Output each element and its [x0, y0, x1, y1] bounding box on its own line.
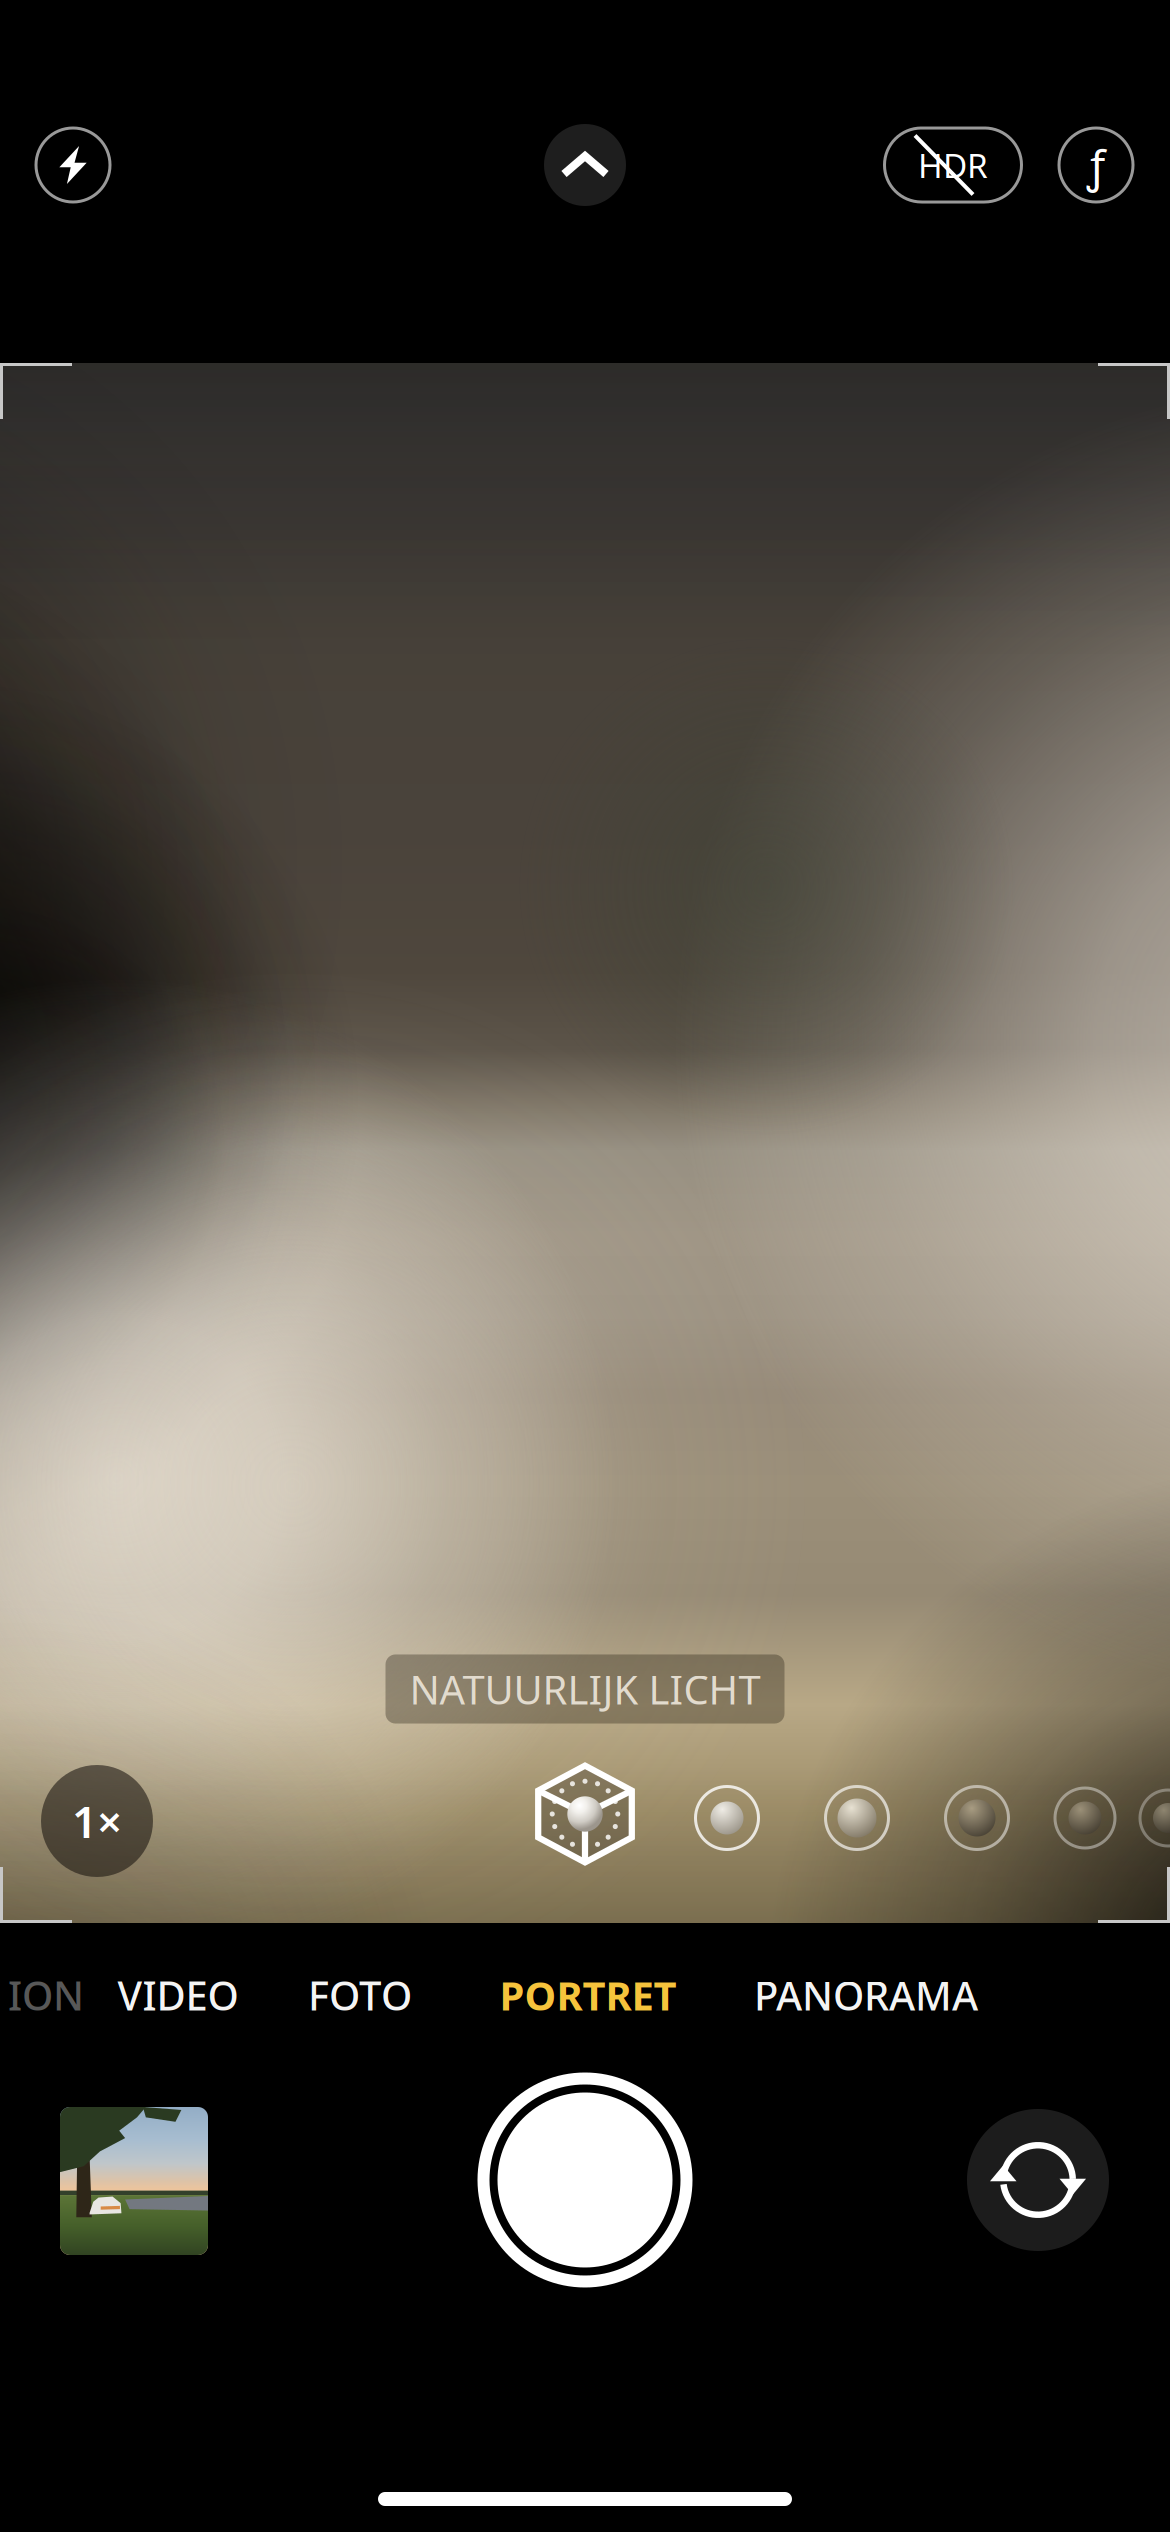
- button[interactable]: VIDEO: [103, 1942, 252, 2047]
- button[interactable]: Take photo: [475, 2070, 695, 2290]
- staticText: PORTRET: [499, 1968, 676, 2021]
- button[interactable]: Natural light: [533, 1762, 637, 1866]
- button[interactable]: ION: [0, 1942, 98, 2047]
- button[interactable]: Studio light: [695, 1786, 758, 1849]
- button[interactable]: HDR off: [877, 109, 1029, 221]
- button[interactable]: Stage light mono: [1055, 1788, 1115, 1848]
- button[interactable]: Stage light: [945, 1786, 1008, 1849]
- staticText: HDR: [918, 143, 988, 187]
- button[interactable]: Switch camera: [967, 2109, 1109, 2251]
- button[interactable]: Flash: [17, 109, 129, 221]
- staticText: ION: [8, 1968, 84, 2021]
- button[interactable]: High-key light mono: [1140, 1790, 1170, 1846]
- button[interactable]: Contour light: [825, 1786, 888, 1849]
- staticText: FOTO: [308, 1968, 412, 2021]
- button[interactable]: Photo library: [60, 2107, 208, 2255]
- staticText: NATUURLIJK LICHT: [409, 1662, 760, 1715]
- staticText: PANORAMA: [754, 1968, 978, 2021]
- staticText: 1×: [72, 1792, 122, 1850]
- staticText: ƒ: [1087, 136, 1105, 194]
- button[interactable]: FOTO: [294, 1942, 426, 2047]
- button[interactable]: PORTRET: [485, 1942, 690, 2047]
- button[interactable]: More camera options: [529, 109, 641, 221]
- button[interactable]: Depth control: [1046, 109, 1146, 221]
- button[interactable]: Zoom 1x: [41, 1765, 153, 1877]
- button[interactable]: PANORAMA: [740, 1942, 992, 2047]
- staticText: VIDEO: [117, 1968, 238, 2021]
